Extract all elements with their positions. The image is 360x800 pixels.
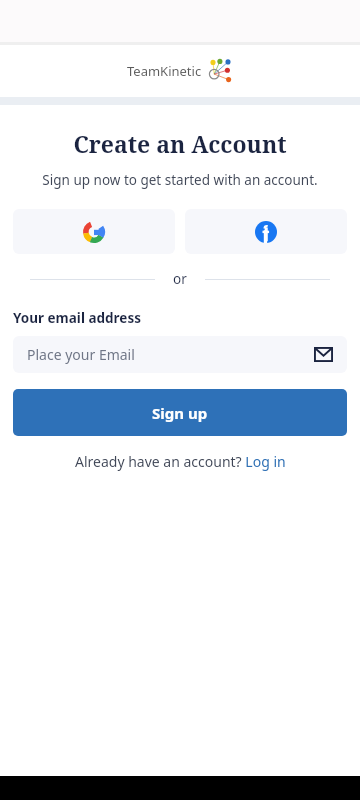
staticText: Sign up now to get started with an accou… [0,171,360,189]
staticText: Already have an account? Log in [75,452,286,471]
button[interactable]: Sign up [13,389,347,436]
staticText: or [173,270,187,288]
button[interactable]: Place your Email [13,336,347,373]
button[interactable]: Already have an account? Log in [67,448,294,475]
staticText: Sign up [152,403,208,423]
button[interactable]: Sign up with Google [13,209,175,254]
button[interactable]: Sign up with Facebook [185,209,347,254]
staticText: TeamKinetic [127,62,202,80]
staticText: Your email address [13,309,141,327]
staticText: Place your Email [27,345,314,364]
staticText: Create an Account [0,128,360,159]
